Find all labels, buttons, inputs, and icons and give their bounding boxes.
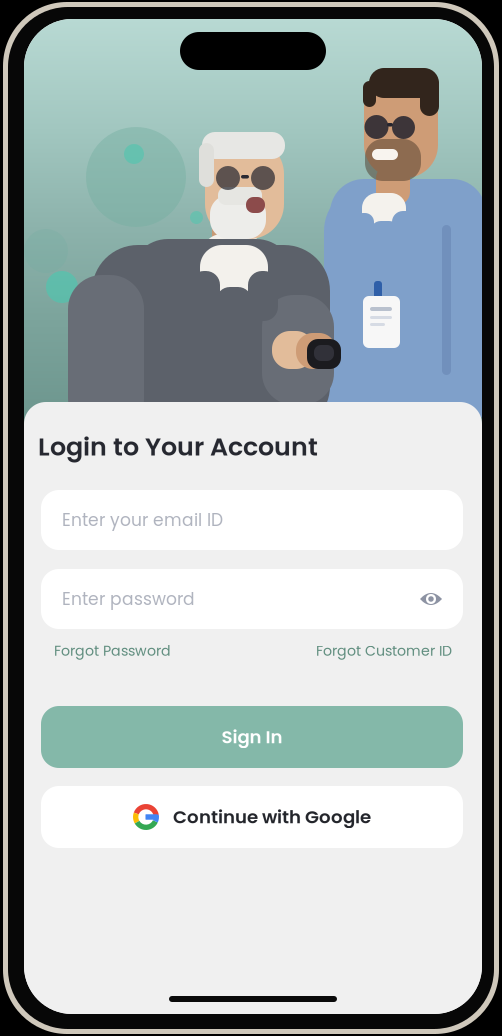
button[interactable]: Sign In bbox=[41, 706, 463, 768]
staticText: Continue with Google bbox=[173, 804, 371, 830]
staticText: Forgot Password bbox=[54, 641, 171, 661]
staticText: Enter password bbox=[62, 587, 195, 611]
button[interactable]: Continue with Google bbox=[41, 786, 463, 848]
button[interactable]: Forgot Customer ID bbox=[316, 641, 452, 661]
staticText: Forgot Customer ID bbox=[316, 641, 452, 661]
button[interactable]: Forgot Password bbox=[54, 641, 171, 661]
button[interactable]: Enter your email ID bbox=[41, 490, 463, 550]
button[interactable]: Enter password bbox=[41, 569, 463, 629]
staticText: Enter your email ID bbox=[62, 508, 223, 532]
staticText: Login to Your Account bbox=[38, 429, 318, 464]
staticText: Sign In bbox=[221, 724, 282, 750]
